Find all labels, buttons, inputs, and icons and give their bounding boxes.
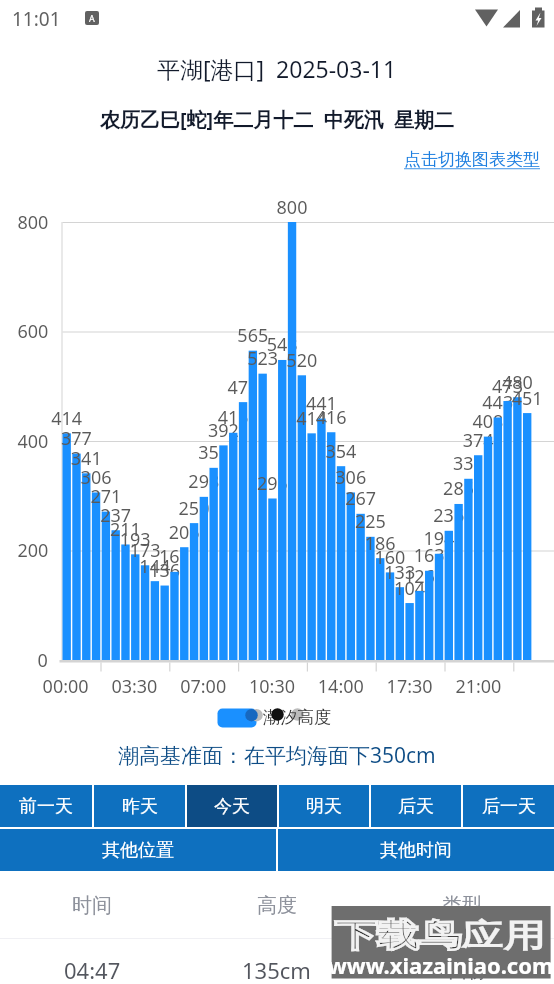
staticText: 类型	[442, 893, 482, 918]
button[interactable]: 其他位置	[0, 829, 276, 871]
button[interactable]: 明天	[279, 785, 369, 827]
staticText: 135cm	[242, 955, 311, 984]
button[interactable]: 后天	[371, 785, 461, 827]
staticText: 今天	[214, 795, 250, 818]
staticText: 点击切换图表类型	[404, 149, 540, 170]
button[interactable]: 04:47	[0, 939, 554, 984]
staticText: 其他时间	[380, 839, 452, 862]
staticText: A	[89, 12, 95, 24]
staticText: 农历乙巳[蛇]年二月十二 中死汛 星期二	[100, 106, 455, 133]
staticText: 后天	[398, 795, 434, 818]
button[interactable]: 昨天	[94, 785, 185, 827]
staticText: 前一天	[19, 795, 73, 818]
staticText: 潮汐高度	[263, 707, 331, 728]
staticText: 04:47	[64, 955, 121, 984]
staticText: 明天	[306, 795, 342, 818]
staticText: 其他位置	[102, 839, 174, 862]
staticText: 平湖[港口] 2025-03-11	[157, 53, 397, 84]
button[interactable]: 今天	[187, 785, 277, 827]
staticText: 干潮	[440, 956, 484, 984]
button[interactable]: 其他时间	[278, 829, 554, 871]
staticText: 11:01	[12, 6, 61, 32]
staticText: 昨天	[122, 795, 158, 818]
staticText: 时间	[72, 893, 112, 918]
staticText: 高度	[257, 893, 297, 918]
staticText: 潮高基准面：在平均海面下350cm	[118, 741, 436, 770]
button[interactable]: 前一天	[0, 785, 92, 827]
button[interactable]: 后一天	[463, 785, 554, 827]
staticText: 后一天	[482, 795, 536, 818]
button[interactable]: 点击切换图表类型	[0, 149, 540, 170]
